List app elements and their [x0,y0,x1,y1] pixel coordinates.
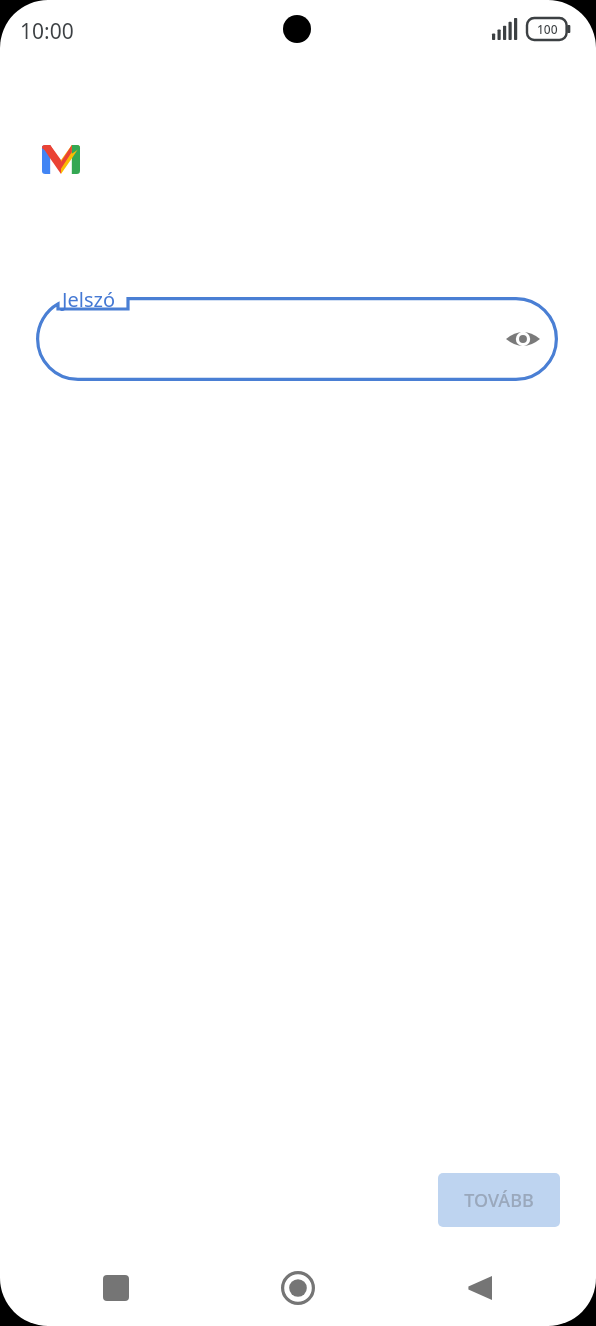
button[interactable]: Home [198,1254,397,1326]
button[interactable]: TOVÁBB [438,1173,560,1227]
button[interactable]: Recent apps [0,1254,198,1326]
button[interactable]: Jelszó megjelenítése [36,297,558,381]
staticText: 100 [537,21,558,37]
button[interactable]: Jelszó megjelenítése [499,315,547,363]
staticText: TOVÁBB [464,1188,534,1213]
staticText: Jelszó [62,286,115,313]
button[interactable]: Back [397,1254,596,1326]
staticText: 10:00 [20,17,74,46]
